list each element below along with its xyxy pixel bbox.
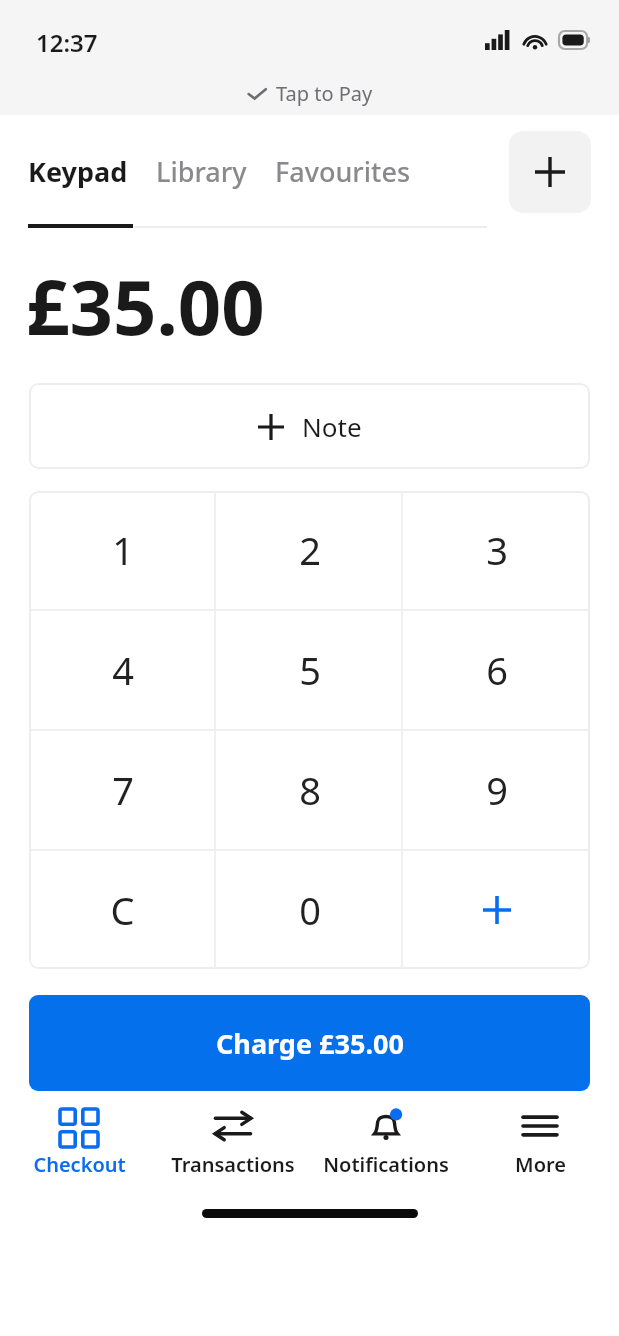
staticText: More (515, 1151, 566, 1178)
button[interactable]: Favourites (261, 153, 425, 190)
button[interactable]: 9 (403, 731, 590, 849)
staticText: Note (302, 409, 362, 444)
button[interactable]: Notifications (311, 1105, 461, 1178)
staticText: Notifications (323, 1151, 449, 1178)
button[interactable]: 7 (29, 731, 216, 849)
staticText: 8 (299, 764, 321, 816)
staticText: 6 (486, 644, 508, 696)
button[interactable]: Keypad (28, 153, 142, 190)
button[interactable]: Checkout (4, 1105, 154, 1178)
staticText: 4 (112, 644, 134, 696)
staticText: 12:37 (36, 26, 98, 59)
button[interactable]: 5 (216, 611, 403, 729)
staticText: 2 (299, 524, 321, 576)
button[interactable]: Add item (509, 131, 591, 213)
staticText: Library (156, 153, 247, 190)
button[interactable]: Transactions (158, 1105, 308, 1178)
button[interactable]: 8 (216, 731, 403, 849)
button[interactable]: Charge £35.00 (29, 995, 590, 1091)
button[interactable]: C (29, 851, 216, 969)
button[interactable]: 6 (403, 611, 590, 729)
button[interactable]: Note (29, 383, 590, 469)
staticText: 1 (112, 524, 134, 576)
button[interactable]: 2 (216, 491, 403, 609)
button[interactable]: Library (142, 153, 261, 190)
staticText: C (110, 884, 135, 936)
staticText: 3 (486, 524, 508, 576)
staticText: Charge £35.00 (216, 1025, 404, 1062)
button[interactable]: More (465, 1105, 615, 1178)
staticText: Tap to Pay (276, 80, 373, 107)
staticText: Favourites (275, 153, 411, 190)
staticText: 9 (486, 764, 508, 816)
button[interactable]: 1 (29, 491, 216, 609)
staticText: Transactions (171, 1151, 295, 1178)
button[interactable]: Add (403, 851, 590, 969)
staticText: Keypad (28, 153, 128, 190)
staticText: 5 (299, 644, 321, 696)
other: Add (483, 896, 511, 924)
staticText: 0 (299, 884, 321, 936)
staticText: 7 (112, 764, 134, 816)
button[interactable]: 3 (403, 491, 590, 609)
button[interactable]: 0 (216, 851, 403, 969)
staticText: £35.00 (26, 254, 265, 358)
staticText: Checkout (33, 1151, 126, 1178)
button[interactable]: 4 (29, 611, 216, 729)
